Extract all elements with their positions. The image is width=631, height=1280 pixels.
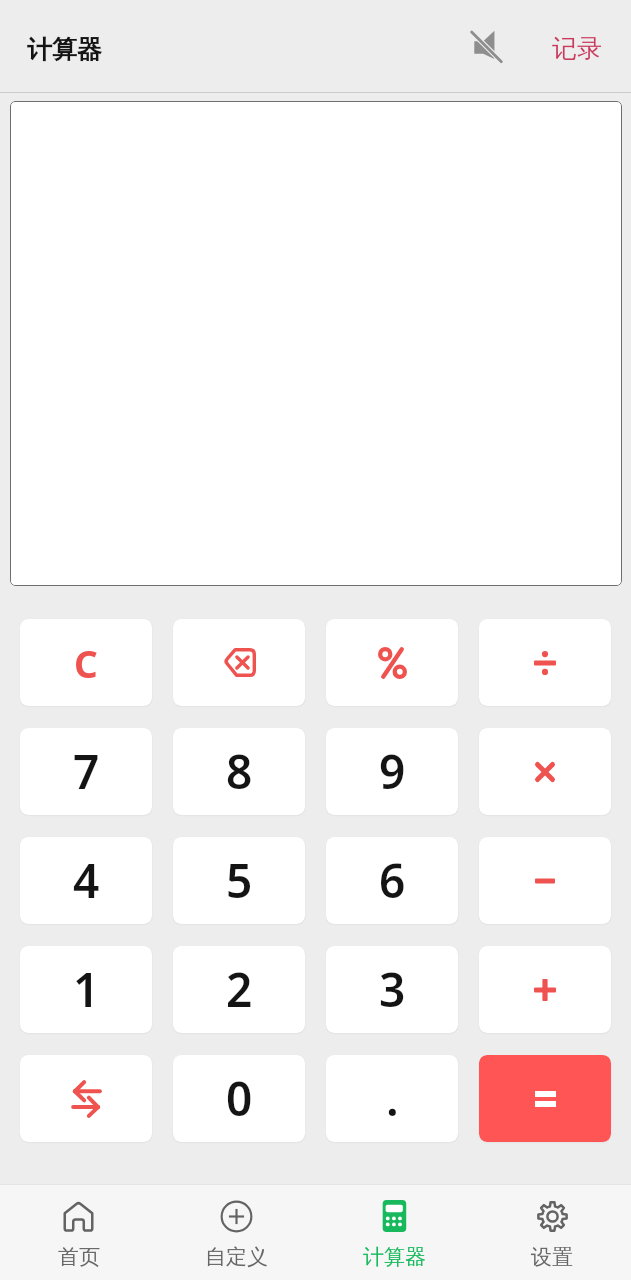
staticText: 5	[226, 849, 253, 912]
staticText: C	[74, 638, 98, 688]
staticText: 自定义	[205, 1244, 268, 1270]
staticText: 记录	[552, 33, 602, 64]
button[interactable]: 首页	[0, 1185, 157, 1280]
button[interactable]: Mute	[454, 14, 518, 78]
staticText: 计算器	[363, 1244, 426, 1270]
staticText: 2	[226, 958, 253, 1021]
button[interactable]: Add	[479, 946, 611, 1033]
button[interactable]: 9	[326, 728, 458, 815]
button[interactable]: 4	[20, 837, 152, 924]
button[interactable]: 8	[173, 728, 305, 815]
staticText: 0	[226, 1067, 253, 1130]
button[interactable]: 自定义	[157, 1185, 315, 1280]
button[interactable]: Divide	[479, 619, 611, 706]
button[interactable]: 1	[20, 946, 152, 1033]
button[interactable]: 6	[326, 837, 458, 924]
button[interactable]: 3	[326, 946, 458, 1033]
button[interactable]: 5	[173, 837, 305, 924]
staticText: 9	[379, 740, 406, 803]
staticText: 计算器	[27, 34, 102, 65]
staticText: 3	[379, 958, 406, 1021]
staticText: 7	[73, 740, 100, 803]
staticText: 首页	[58, 1244, 100, 1270]
button[interactable]: Swap	[20, 1055, 152, 1142]
button[interactable]: 计算器	[315, 1185, 473, 1280]
button[interactable]: 2	[173, 946, 305, 1033]
staticText: .	[386, 1067, 399, 1130]
staticText: 8	[226, 740, 253, 803]
button[interactable]: Equals	[479, 1055, 611, 1142]
button[interactable]: 设置	[473, 1185, 631, 1280]
staticText: 设置	[531, 1244, 573, 1270]
staticText: 1	[73, 958, 100, 1021]
button[interactable]: Subtract	[479, 837, 611, 924]
staticText: 4	[73, 849, 100, 912]
button[interactable]: C	[20, 619, 152, 706]
button[interactable]: .	[326, 1055, 458, 1142]
button[interactable]: Multiply	[479, 728, 611, 815]
staticText: 6	[379, 849, 406, 912]
button[interactable]: 7	[20, 728, 152, 815]
button[interactable]: Backspace	[173, 619, 305, 706]
button[interactable]: 0	[173, 1055, 305, 1142]
button[interactable]: 记录	[528, 14, 631, 78]
button[interactable]: Percent	[326, 619, 458, 706]
